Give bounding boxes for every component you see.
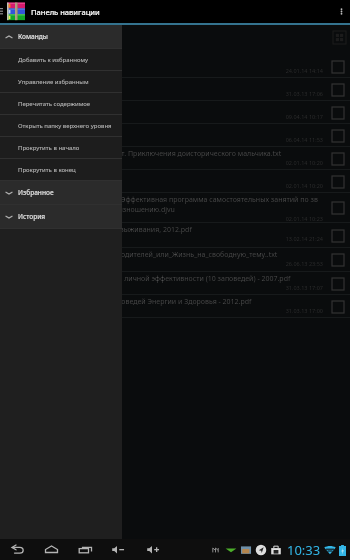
staticText: Как быть, ког bbox=[6, 80, 51, 90]
staticText: Команды bbox=[18, 32, 48, 41]
button[interactable]: Добавить к избранному bbox=[0, 49, 122, 70]
button[interactable]: Volume down bbox=[110, 539, 126, 560]
staticText: Суперпамять bbox=[6, 57, 52, 67]
button[interactable]: Управление избранным bbox=[0, 71, 122, 92]
staticText: Перечитать содержимое bbox=[18, 100, 91, 108]
button[interactable]: Избранное bbox=[0, 181, 122, 204]
staticText: Кови. Семь навыков эффективной личной эф… bbox=[6, 274, 291, 284]
button[interactable]: Home bbox=[43, 539, 59, 560]
button[interactable]: Кови. Семь навыков эффективной личной эф… bbox=[0, 272, 350, 295]
button[interactable]: Прокрутить в начало bbox=[0, 137, 122, 158]
button[interactable]: Открыть папку верхнего уровня bbox=[0, 115, 122, 136]
staticText: 06.04.14 11:53 bbox=[6, 136, 323, 143]
button[interactable]: Философски bbox=[0, 124, 350, 147]
staticText: Философски bbox=[6, 126, 49, 136]
staticText: Как завоевы bbox=[6, 103, 49, 113]
staticText: 31.03.13 17:00 bbox=[6, 307, 323, 314]
staticText: Управление избранным bbox=[18, 78, 89, 86]
staticText: Добавить к избранному bbox=[18, 56, 89, 64]
staticText: 24.01.14 14:14 bbox=[6, 67, 323, 74]
staticText: Прокрутить в начало bbox=[18, 144, 80, 152]
staticText: Панель навигации bbox=[31, 7, 100, 17]
button[interactable]: Ж.Рони-старший. Д'Эрвильи Эрнст. Приключ… bbox=[0, 147, 350, 170]
staticText: Некрасов. Материнская любовь родителей_и… bbox=[6, 250, 278, 260]
button[interactable]: История bbox=[0, 205, 122, 228]
button[interactable]: Прокрутить в конец bbox=[0, 159, 122, 180]
button[interactable]: Как быть, ког bbox=[0, 78, 350, 101]
staticText: 02.01.14 10:20 bbox=[6, 182, 323, 189]
button[interactable]: Психология bbox=[0, 170, 350, 193]
button[interactable]: View mode bbox=[333, 31, 346, 44]
button[interactable]: Суперпамять bbox=[0, 55, 350, 78]
button[interactable]: Е. Косинова. Домашний логопед. Эффективн… bbox=[0, 193, 350, 223]
staticText: Психология bbox=[6, 172, 47, 182]
button[interactable]: Recent apps bbox=[77, 539, 93, 560]
button[interactable]: В. Зеланд. Трансерфинг. Ступень выживани… bbox=[0, 223, 350, 248]
staticText: Прокрутить в конец bbox=[18, 166, 76, 174]
staticText: 31.03.13 17:07 bbox=[6, 284, 323, 291]
button[interactable]: Некрасов. Материнская любовь родителей_и… bbox=[0, 248, 350, 272]
staticText: 02.01.14 10:20 bbox=[6, 159, 323, 166]
button[interactable]: Команды bbox=[0, 25, 122, 48]
staticText: 09.04.14 10:17 bbox=[6, 113, 323, 120]
staticText: уковой культуре речи и звукопроизношению… bbox=[6, 205, 175, 215]
staticText: 26.06.13 23:53 bbox=[6, 260, 323, 267]
button[interactable]: More options bbox=[332, 0, 350, 23]
button[interactable]: Volume up bbox=[145, 539, 161, 560]
staticText: История bbox=[18, 212, 46, 221]
staticText: Избранное bbox=[18, 188, 54, 197]
staticText: К. Ниши. Система здоровья. 7 заповедей Э… bbox=[6, 297, 252, 307]
button[interactable]: Back bbox=[9, 539, 25, 560]
staticText: Е. Косинова. Домашний логопед. Эффективн… bbox=[6, 195, 318, 205]
button[interactable]: Перечитать содержимое bbox=[0, 93, 122, 114]
staticText: 31.03.13 17:06 bbox=[6, 90, 323, 97]
button[interactable]: К. Ниши. Система здоровья. 7 заповедей Э… bbox=[0, 295, 350, 318]
button[interactable]: Как завоевы bbox=[0, 101, 350, 124]
staticText: Открыть папку верхнего уровня bbox=[18, 122, 112, 130]
button[interactable]: Open navigation drawer bbox=[0, 0, 7, 23]
staticText: В. Зеланд. Трансерфинг. Ступень выживани… bbox=[6, 225, 192, 235]
staticText: 10:33 bbox=[287, 541, 321, 559]
staticText: Ж.Рони-старший. Д'Эрвильи Эрнст. Приключ… bbox=[6, 149, 282, 159]
staticText: 02.01.14 10:23 bbox=[6, 215, 323, 222]
staticText: 13.02.14 21:24 bbox=[6, 235, 323, 242]
